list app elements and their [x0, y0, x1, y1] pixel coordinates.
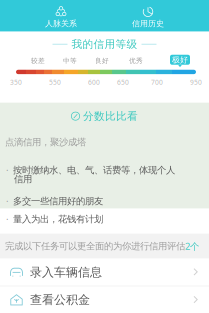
staticText: 550: [49, 78, 61, 87]
staticText: 人脉关系: [45, 19, 77, 28]
staticText: 查看公积金: [30, 292, 90, 307]
staticText: 点滴信用，聚沙成塔: [5, 136, 86, 148]
staticText: 我的信用等级: [71, 38, 137, 51]
staticText: 650: [117, 78, 129, 87]
staticText: 信用历史: [132, 19, 164, 28]
staticText: 录入车辆信息: [30, 265, 102, 279]
staticText: 950: [190, 78, 202, 87]
staticText: 分数比比看: [83, 110, 138, 123]
button[interactable]: 查看公积金: [0, 286, 209, 313]
staticText: ·: [6, 164, 9, 176]
staticText: 较差: [31, 57, 45, 65]
button[interactable]: 分数比比看: [0, 111, 209, 122]
staticText: 多交一些信用好的朋友: [13, 195, 103, 207]
staticText: 信用: [14, 173, 32, 185]
staticText: 优秀: [129, 57, 143, 65]
staticText: 600: [88, 78, 100, 87]
button[interactable]: 人脉关系: [35, 4, 87, 30]
staticText: 350: [10, 78, 22, 87]
staticText: ·: [6, 213, 9, 225]
button[interactable]: 信用历史: [122, 4, 174, 30]
staticText: 中等: [63, 57, 77, 65]
staticText: ·: [6, 195, 9, 207]
staticText: 良好: [95, 57, 109, 65]
staticText: 量入为出，花钱有计划: [13, 213, 103, 225]
button[interactable]: 录入车辆信息: [0, 259, 209, 286]
staticText: 按时缴纳水、电、气、话费等，体现个人: [13, 164, 175, 176]
staticText: 极好: [172, 55, 188, 65]
staticText: 700: [151, 78, 163, 87]
staticText: 2个: [185, 240, 199, 252]
staticText: 完成以下任务可以更全面的为你进行信用评估: [5, 240, 185, 252]
